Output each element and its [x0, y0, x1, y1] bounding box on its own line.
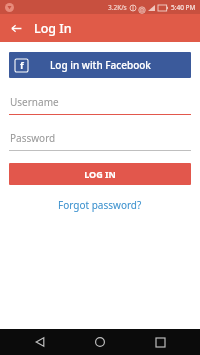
- staticText: 5:40 PM: [171, 3, 196, 12]
- button[interactable]: Username: [9, 95, 191, 115]
- staticText: f: [20, 59, 24, 72]
- button[interactable]: Recent apps: [140, 329, 180, 355]
- staticText: Forgot password?: [58, 198, 142, 212]
- button[interactable]: Home: [80, 329, 120, 355]
- button[interactable]: Forgot password?: [52, 195, 148, 215]
- button[interactable]: Password: [9, 131, 191, 151]
- staticText: Password: [10, 131, 56, 145]
- staticText: LOG IN: [84, 168, 116, 180]
- staticText: Log In: [34, 20, 72, 37]
- staticText: 3.2K/s: [108, 3, 127, 12]
- button[interactable]: f: [9, 52, 191, 78]
- staticText: Log in with Facebook: [50, 58, 151, 72]
- button[interactable]: LOG IN: [9, 163, 191, 185]
- staticText: Username: [10, 95, 59, 109]
- button[interactable]: Back: [6, 18, 26, 38]
- button[interactable]: Back: [20, 329, 60, 355]
